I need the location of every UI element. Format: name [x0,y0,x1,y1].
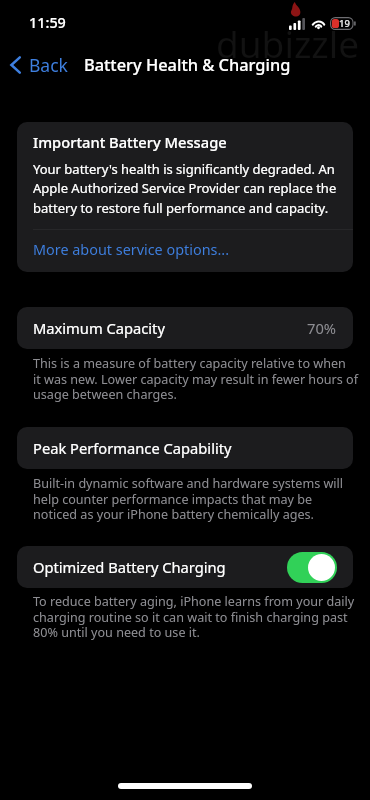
staticText: Your battery's health is significantly d… [33,160,337,217]
staticText: To reduce battery aging, iPhone learns f… [33,593,355,641]
staticText: 19 [339,17,350,30]
staticText: Peak Performance Capability [33,438,232,458]
button[interactable]: More about service options... [17,230,353,272]
staticText: Important Battery Message [33,132,227,152]
button[interactable]: Peak Performance Capability [17,427,353,469]
button[interactable]: Back [0,49,76,81]
staticText: More about service options... [33,240,230,260]
button[interactable]: Optimized Battery Charging [17,546,353,588]
button[interactable]: Maximum Capacity [17,307,353,349]
staticText: Maximum Capacity [33,318,165,338]
staticText: Battery Health & Charging [84,53,291,75]
staticText: dubizzle [216,18,360,68]
staticText: 70% [307,318,337,338]
button[interactable]: Optimized Battery Charging toggle [287,552,337,583]
staticText: 11:59 [29,13,66,33]
staticText: Built-in dynamic software and hardware s… [33,475,344,523]
staticText: Back [29,53,68,77]
staticText: This is a measure of battery capacity re… [33,355,359,403]
staticText: Optimized Battery Charging [33,557,226,577]
